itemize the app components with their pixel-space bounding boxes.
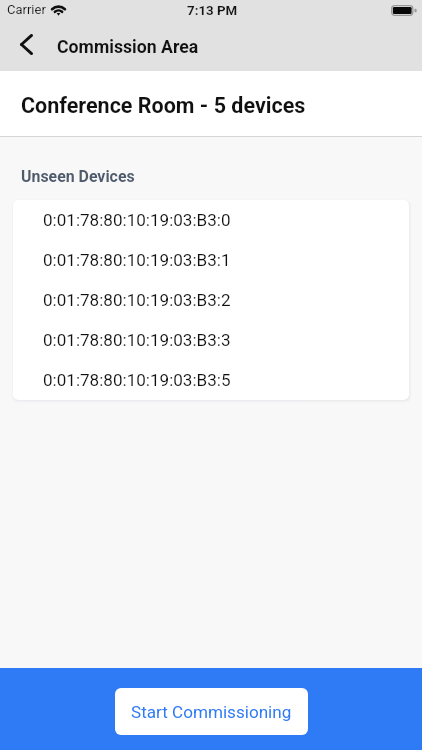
staticText: 0:01:78:80:10:19:03:B3:2 bbox=[43, 290, 231, 310]
staticText: 7:13 PM bbox=[187, 3, 238, 19]
staticText: Commission Area bbox=[57, 37, 199, 58]
button[interactable]: 0:01:78:80:10:19:03:B3:5 bbox=[13, 360, 409, 400]
staticText: 0:01:78:80:10:19:03:B3:0 bbox=[43, 210, 231, 230]
button[interactable]: Start Commissioning bbox=[115, 688, 308, 735]
staticText: Unseen Devices bbox=[21, 167, 135, 186]
button[interactable]: 0:01:78:80:10:19:03:B3:0 bbox=[13, 200, 409, 240]
button[interactable]: 0:01:78:80:10:19:03:B3:2 bbox=[13, 280, 409, 320]
button[interactable]: Back bbox=[8, 26, 44, 62]
staticText: 0:01:78:80:10:19:03:B3:1 bbox=[43, 250, 231, 270]
staticText: 0:01:78:80:10:19:03:B3:5 bbox=[43, 370, 231, 390]
button[interactable]: 0:01:78:80:10:19:03:B3:3 bbox=[13, 320, 409, 360]
staticText: Start Commissioning bbox=[131, 702, 292, 722]
staticText: Conference Room - 5 devices bbox=[21, 93, 306, 118]
staticText: 0:01:78:80:10:19:03:B3:3 bbox=[43, 330, 231, 350]
button[interactable]: 0:01:78:80:10:19:03:B3:1 bbox=[13, 240, 409, 280]
staticText: Carrier bbox=[7, 2, 46, 17]
